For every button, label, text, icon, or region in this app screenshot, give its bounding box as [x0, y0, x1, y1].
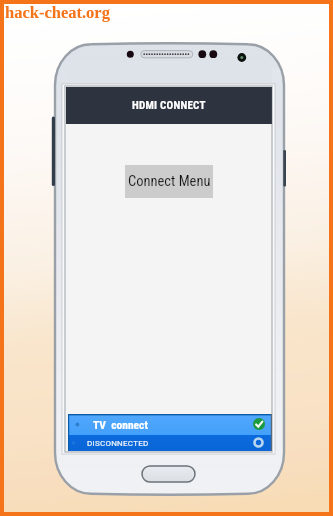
staticText: Connect Menu [128, 173, 211, 190]
button[interactable]: TV connect [68, 414, 272, 435]
staticText: HDMI CONNECT [132, 99, 206, 112]
button[interactable]: Connect Menu [125, 165, 213, 198]
staticText: TV connect [93, 418, 148, 431]
staticText: hack-cheat.org [5, 3, 110, 21]
button[interactable]: DISCONNECTED [68, 435, 272, 451]
other: Connecting [253, 437, 264, 448]
staticText: DISCONNECTED [87, 439, 149, 448]
